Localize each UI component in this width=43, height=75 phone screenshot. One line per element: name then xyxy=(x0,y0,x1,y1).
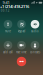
staticText: +1 (214) 418-2116 xyxy=(0,4,29,9)
button[interactable]: add call xyxy=(3,41,13,54)
staticText: add call xyxy=(3,50,13,54)
staticText: mute xyxy=(4,29,11,33)
button[interactable]: End Call xyxy=(17,57,26,66)
staticText: keypad xyxy=(17,29,25,33)
button[interactable]: mute xyxy=(4,20,12,33)
button[interactable]: keypad xyxy=(17,20,26,33)
staticText: 00:12 xyxy=(1,9,10,12)
staticText: 9:41 xyxy=(2,0,9,5)
staticText: FaceTime xyxy=(16,50,27,54)
button[interactable]: contacts xyxy=(30,41,40,54)
staticText: audio xyxy=(31,29,39,33)
button[interactable]: audio xyxy=(31,20,39,33)
button[interactable]: FaceTime xyxy=(16,41,27,54)
staticText: contacts xyxy=(30,50,40,54)
